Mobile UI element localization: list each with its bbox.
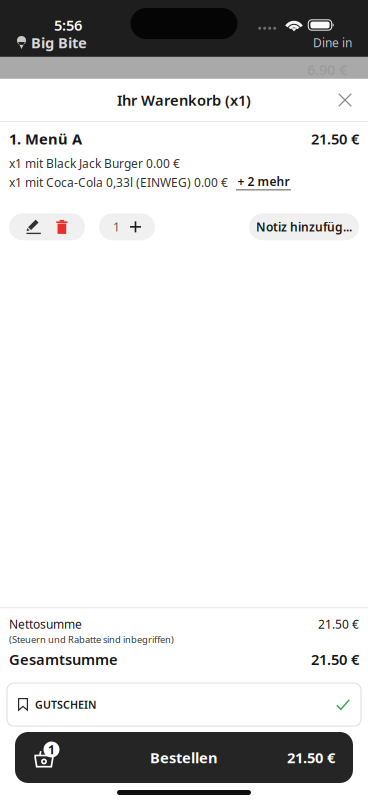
staticText: + 2 mehr	[237, 173, 289, 189]
button[interactable]: GUTSCHEIN	[0, 669, 368, 726]
button[interactable]: Schließen	[325, 80, 365, 120]
button[interactable]: Bearbeiten	[26, 219, 41, 234]
staticText: 6.90 €	[307, 60, 347, 79]
button[interactable]: 1	[0, 726, 368, 783]
staticText: 1	[113, 219, 120, 235]
staticText: Nettosumme	[9, 616, 82, 632]
staticText: Bestellen	[150, 748, 218, 767]
staticText: 21.50 €	[311, 129, 359, 148]
button[interactable]: + 2 mehr	[236, 173, 291, 190]
staticText: 5:56	[54, 15, 82, 35]
staticText: Ihr Warenkorb (x1)	[117, 90, 251, 110]
staticText: Dine in	[313, 34, 352, 50]
staticText: 1. Menü A	[9, 129, 82, 148]
staticText: (Steuern und Rabatte sind inbegriffen)	[9, 633, 174, 645]
button[interactable]: Menge erhöhen	[130, 221, 141, 232]
staticText: Big Bite	[31, 33, 87, 52]
staticText: Notiz hinzufüg...	[256, 219, 352, 235]
staticText: 21.50 €	[311, 649, 359, 669]
staticText: x1 mit Coca-Cola 0,33l (EINWEG) 0.00 €	[9, 174, 228, 190]
button[interactable]: Löschen	[56, 220, 68, 234]
staticText: x1 mit Black Jack Burger 0.00 €	[9, 155, 180, 171]
staticText: Gesamtsumme	[9, 649, 118, 669]
staticText: 1	[48, 741, 55, 757]
staticText: 21.50 €	[318, 616, 359, 632]
staticText: GUTSCHEIN	[35, 697, 96, 712]
staticText: 21.50 €	[287, 748, 335, 767]
button[interactable]: Notiz hinzufüg...	[249, 213, 359, 240]
